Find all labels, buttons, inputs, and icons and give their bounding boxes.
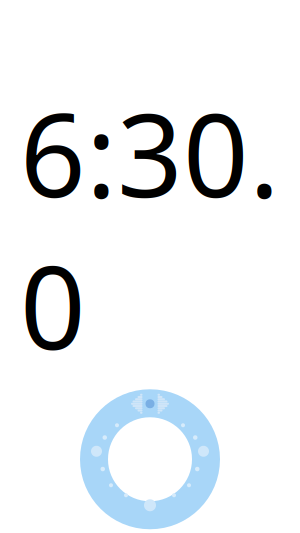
- button[interactable]: Time wheel: [80, 389, 220, 529]
- staticText: 6:30.0: [20, 77, 280, 381]
